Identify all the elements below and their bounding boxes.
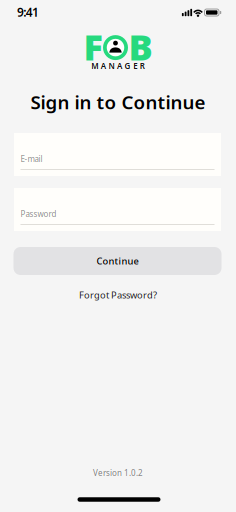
button[interactable]: Password — [14, 188, 221, 231]
staticText: 9:41 — [17, 4, 39, 20]
staticText: N — [108, 61, 114, 71]
staticText: Password — [20, 209, 56, 219]
staticText: Continue — [96, 255, 138, 267]
staticText: M — [91, 61, 98, 71]
staticText: E — [133, 61, 137, 71]
staticText: E-mail — [20, 154, 42, 164]
staticText: Version 1.0.2 — [93, 468, 143, 478]
staticText: R — [140, 61, 145, 71]
button[interactable]: Forgot Password? — [79, 289, 157, 301]
staticText: Forgot Password? — [79, 289, 157, 301]
button[interactable]: E-mail — [14, 133, 221, 176]
staticText: A — [101, 61, 106, 71]
staticText: G — [125, 61, 131, 71]
staticText: A — [117, 61, 122, 71]
button[interactable]: Continue — [13, 247, 221, 275]
staticText: F — [83, 23, 102, 70]
staticText: Sign in to Continue — [30, 90, 205, 114]
staticText: B — [128, 23, 152, 70]
